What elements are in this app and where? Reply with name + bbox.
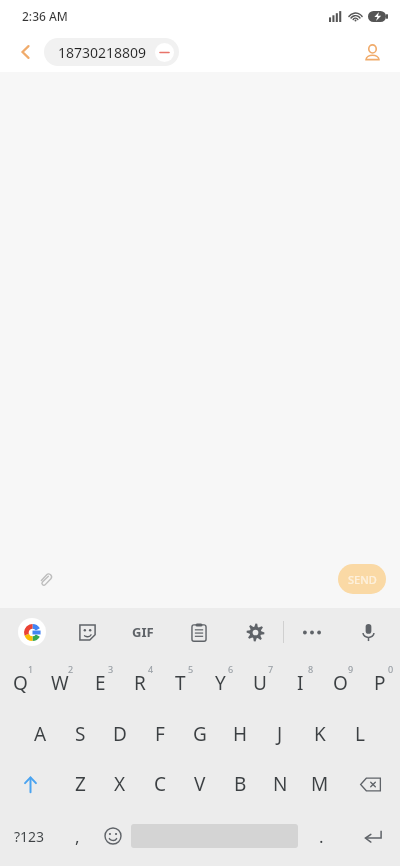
button[interactable]: .	[298, 809, 345, 863]
staticText: D	[113, 721, 127, 747]
staticText: R	[134, 670, 146, 696]
staticText: F	[155, 721, 165, 747]
staticText: I	[297, 670, 304, 696]
button[interactable]: N	[260, 759, 300, 809]
button[interactable]: U	[240, 656, 280, 709]
staticText: L	[355, 721, 365, 747]
button[interactable]: I	[280, 656, 320, 709]
staticText: 3	[108, 663, 114, 675]
staticText: X	[114, 771, 126, 797]
button[interactable]: More options	[284, 608, 340, 656]
button[interactable]: J	[260, 709, 300, 759]
staticText: 2	[68, 663, 74, 675]
button[interactable]: T	[160, 656, 200, 709]
button[interactable]: F	[140, 709, 180, 759]
staticText: P	[374, 670, 386, 696]
button[interactable]: X	[100, 759, 140, 809]
staticText: 2:36 AM	[22, 8, 68, 24]
staticText: B	[234, 771, 247, 797]
button[interactable]: Remove recipient	[155, 43, 174, 62]
button[interactable]: E	[80, 656, 120, 709]
staticText: 0	[388, 663, 394, 675]
button[interactable]: ,	[59, 809, 95, 863]
button[interactable]: W	[40, 656, 80, 709]
staticText: W	[51, 670, 69, 696]
staticText: Y	[215, 670, 226, 696]
button[interactable]: M	[300, 759, 340, 809]
staticText: ?123	[14, 827, 45, 846]
button[interactable]: Back	[8, 34, 44, 70]
staticText: 8	[308, 663, 314, 675]
button[interactable]: C	[140, 759, 180, 809]
button[interactable]: Shift	[0, 759, 60, 809]
button[interactable]: A	[20, 709, 60, 759]
button[interactable]: V	[180, 759, 220, 809]
staticText: N	[273, 771, 288, 797]
staticText: E	[95, 670, 106, 696]
staticText: T	[175, 670, 186, 696]
staticText: H	[233, 721, 248, 747]
button[interactable]: ?123	[0, 809, 59, 863]
staticText: A	[34, 721, 47, 747]
staticText: 7	[268, 663, 274, 675]
button[interactable]: H	[220, 709, 260, 759]
button[interactable]: Attach	[28, 562, 62, 596]
button[interactable]: B	[220, 759, 260, 809]
staticText: U	[253, 670, 267, 696]
staticText: SEND	[348, 572, 377, 587]
staticText: Z	[75, 771, 86, 797]
staticText: O	[333, 670, 348, 696]
button[interactable]: Clipboard	[171, 608, 227, 656]
button[interactable]: Y	[200, 656, 240, 709]
button[interactable]: P	[360, 656, 400, 709]
staticText: V	[194, 771, 206, 797]
button[interactable]: Google search	[4, 608, 59, 656]
button[interactable]: 18730218809	[44, 38, 179, 66]
button[interactable]: Settings	[227, 608, 283, 656]
button[interactable]: SEND	[338, 564, 386, 594]
staticText: Q	[13, 670, 28, 696]
staticText: J	[277, 721, 283, 747]
staticText: ,	[75, 825, 80, 848]
staticText: 4	[148, 663, 154, 675]
staticText: 6	[228, 663, 234, 675]
staticText: 1	[28, 663, 34, 675]
staticText: 18730218809	[58, 43, 147, 62]
staticText: M	[311, 771, 329, 797]
staticText: K	[314, 721, 326, 747]
button[interactable]: R	[120, 656, 160, 709]
staticText: GIF	[132, 623, 154, 641]
button[interactable]: S	[60, 709, 100, 759]
button[interactable]: K	[300, 709, 340, 759]
button[interactable]: Enter	[345, 809, 400, 863]
button[interactable]: Stickers	[59, 608, 115, 656]
button[interactable]: Q	[0, 656, 40, 709]
staticText: G	[193, 721, 207, 747]
staticText: C	[154, 771, 167, 797]
button[interactable]: Emoji	[95, 809, 131, 863]
button[interactable]: GIF	[115, 608, 171, 656]
staticText: S	[75, 721, 86, 747]
staticText: 5	[188, 663, 194, 675]
button[interactable]: G	[180, 709, 220, 759]
button[interactable]: Voice input	[340, 608, 396, 656]
button[interactable]: Backspace	[340, 759, 400, 809]
button[interactable]: Contacts	[354, 34, 390, 70]
button[interactable]: D	[100, 709, 140, 759]
staticText: 9	[348, 663, 354, 675]
button[interactable]: L	[340, 709, 380, 759]
button[interactable]: Z	[60, 759, 100, 809]
staticText: .	[319, 825, 324, 848]
button[interactable]: O	[320, 656, 360, 709]
